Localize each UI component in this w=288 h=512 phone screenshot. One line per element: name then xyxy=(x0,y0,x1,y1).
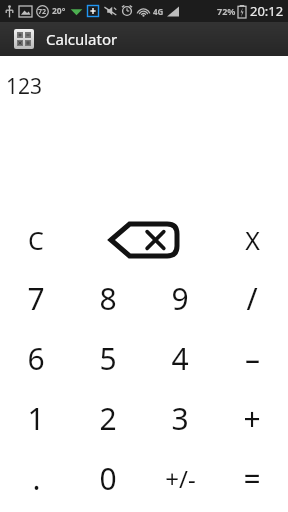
staticText: / xyxy=(246,278,258,319)
staticText: – xyxy=(245,338,260,379)
button[interactable]: X xyxy=(216,210,288,269)
button[interactable]: Backspace xyxy=(72,210,216,269)
button[interactable]: = xyxy=(216,448,288,508)
button[interactable]: 5 xyxy=(72,328,144,388)
staticText: 20° xyxy=(52,5,66,17)
button[interactable]: 8 xyxy=(72,269,144,328)
staticText: 123 xyxy=(6,72,43,101)
staticText: 7 xyxy=(27,278,45,319)
button[interactable]: . xyxy=(0,448,72,508)
button[interactable]: 2 xyxy=(72,388,144,448)
staticText: 6 xyxy=(27,338,45,379)
button[interactable]: – xyxy=(216,328,288,388)
button[interactable]: 4 xyxy=(144,328,216,388)
staticText: . xyxy=(32,458,41,499)
staticText: 1 xyxy=(27,398,45,439)
staticText: 4 xyxy=(171,338,189,379)
button[interactable]: 3 xyxy=(144,388,216,448)
button[interactable]: 1 xyxy=(0,388,72,448)
button[interactable]: 7 xyxy=(0,269,72,328)
staticText: 4G xyxy=(153,6,164,17)
button[interactable]: 0 xyxy=(72,448,144,508)
button[interactable]: / xyxy=(216,269,288,328)
button[interactable]: C xyxy=(0,210,72,269)
staticText: 72 xyxy=(38,7,47,17)
staticText: 72% xyxy=(217,5,236,17)
staticText: + xyxy=(243,398,261,439)
staticText: 9 xyxy=(171,278,189,319)
staticText: 0 xyxy=(99,458,117,499)
staticText: C xyxy=(28,223,44,257)
button[interactable]: + xyxy=(216,388,288,448)
button[interactable]: +/- xyxy=(144,448,216,508)
button[interactable]: 9 xyxy=(144,269,216,328)
button[interactable]: 6 xyxy=(0,328,72,388)
staticText: X xyxy=(245,223,260,257)
staticText: 8 xyxy=(99,278,117,319)
staticText: 2 xyxy=(99,398,117,439)
staticText: 5 xyxy=(99,338,117,379)
staticText: Calculator xyxy=(46,29,118,49)
staticText: = xyxy=(243,458,261,499)
staticText: 3 xyxy=(171,398,189,439)
staticText: +/- xyxy=(165,462,196,495)
staticText: 20:12 xyxy=(250,2,284,20)
